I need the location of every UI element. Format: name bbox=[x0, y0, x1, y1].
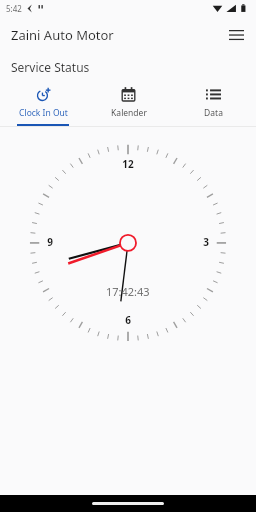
staticText: 17:42:43 bbox=[106, 284, 150, 299]
button[interactable]: Clock In Out bbox=[0, 87, 86, 119]
staticText: 12 bbox=[122, 157, 134, 171]
staticText: 5:42 bbox=[6, 3, 22, 14]
staticText: 3 bbox=[203, 235, 209, 249]
staticText: 6 bbox=[125, 313, 131, 327]
staticText: Zaini Auto Motor bbox=[11, 26, 114, 44]
staticText: Kalender bbox=[111, 107, 147, 119]
staticText: Service Status bbox=[11, 59, 90, 75]
button[interactable]: Open navigation menu bbox=[221, 20, 251, 50]
staticText: Clock In Out bbox=[19, 107, 68, 119]
button[interactable]: Data bbox=[171, 87, 256, 119]
staticText: Data bbox=[204, 107, 223, 119]
button[interactable]: Kalender bbox=[86, 87, 171, 119]
staticText: 9 bbox=[47, 235, 53, 249]
